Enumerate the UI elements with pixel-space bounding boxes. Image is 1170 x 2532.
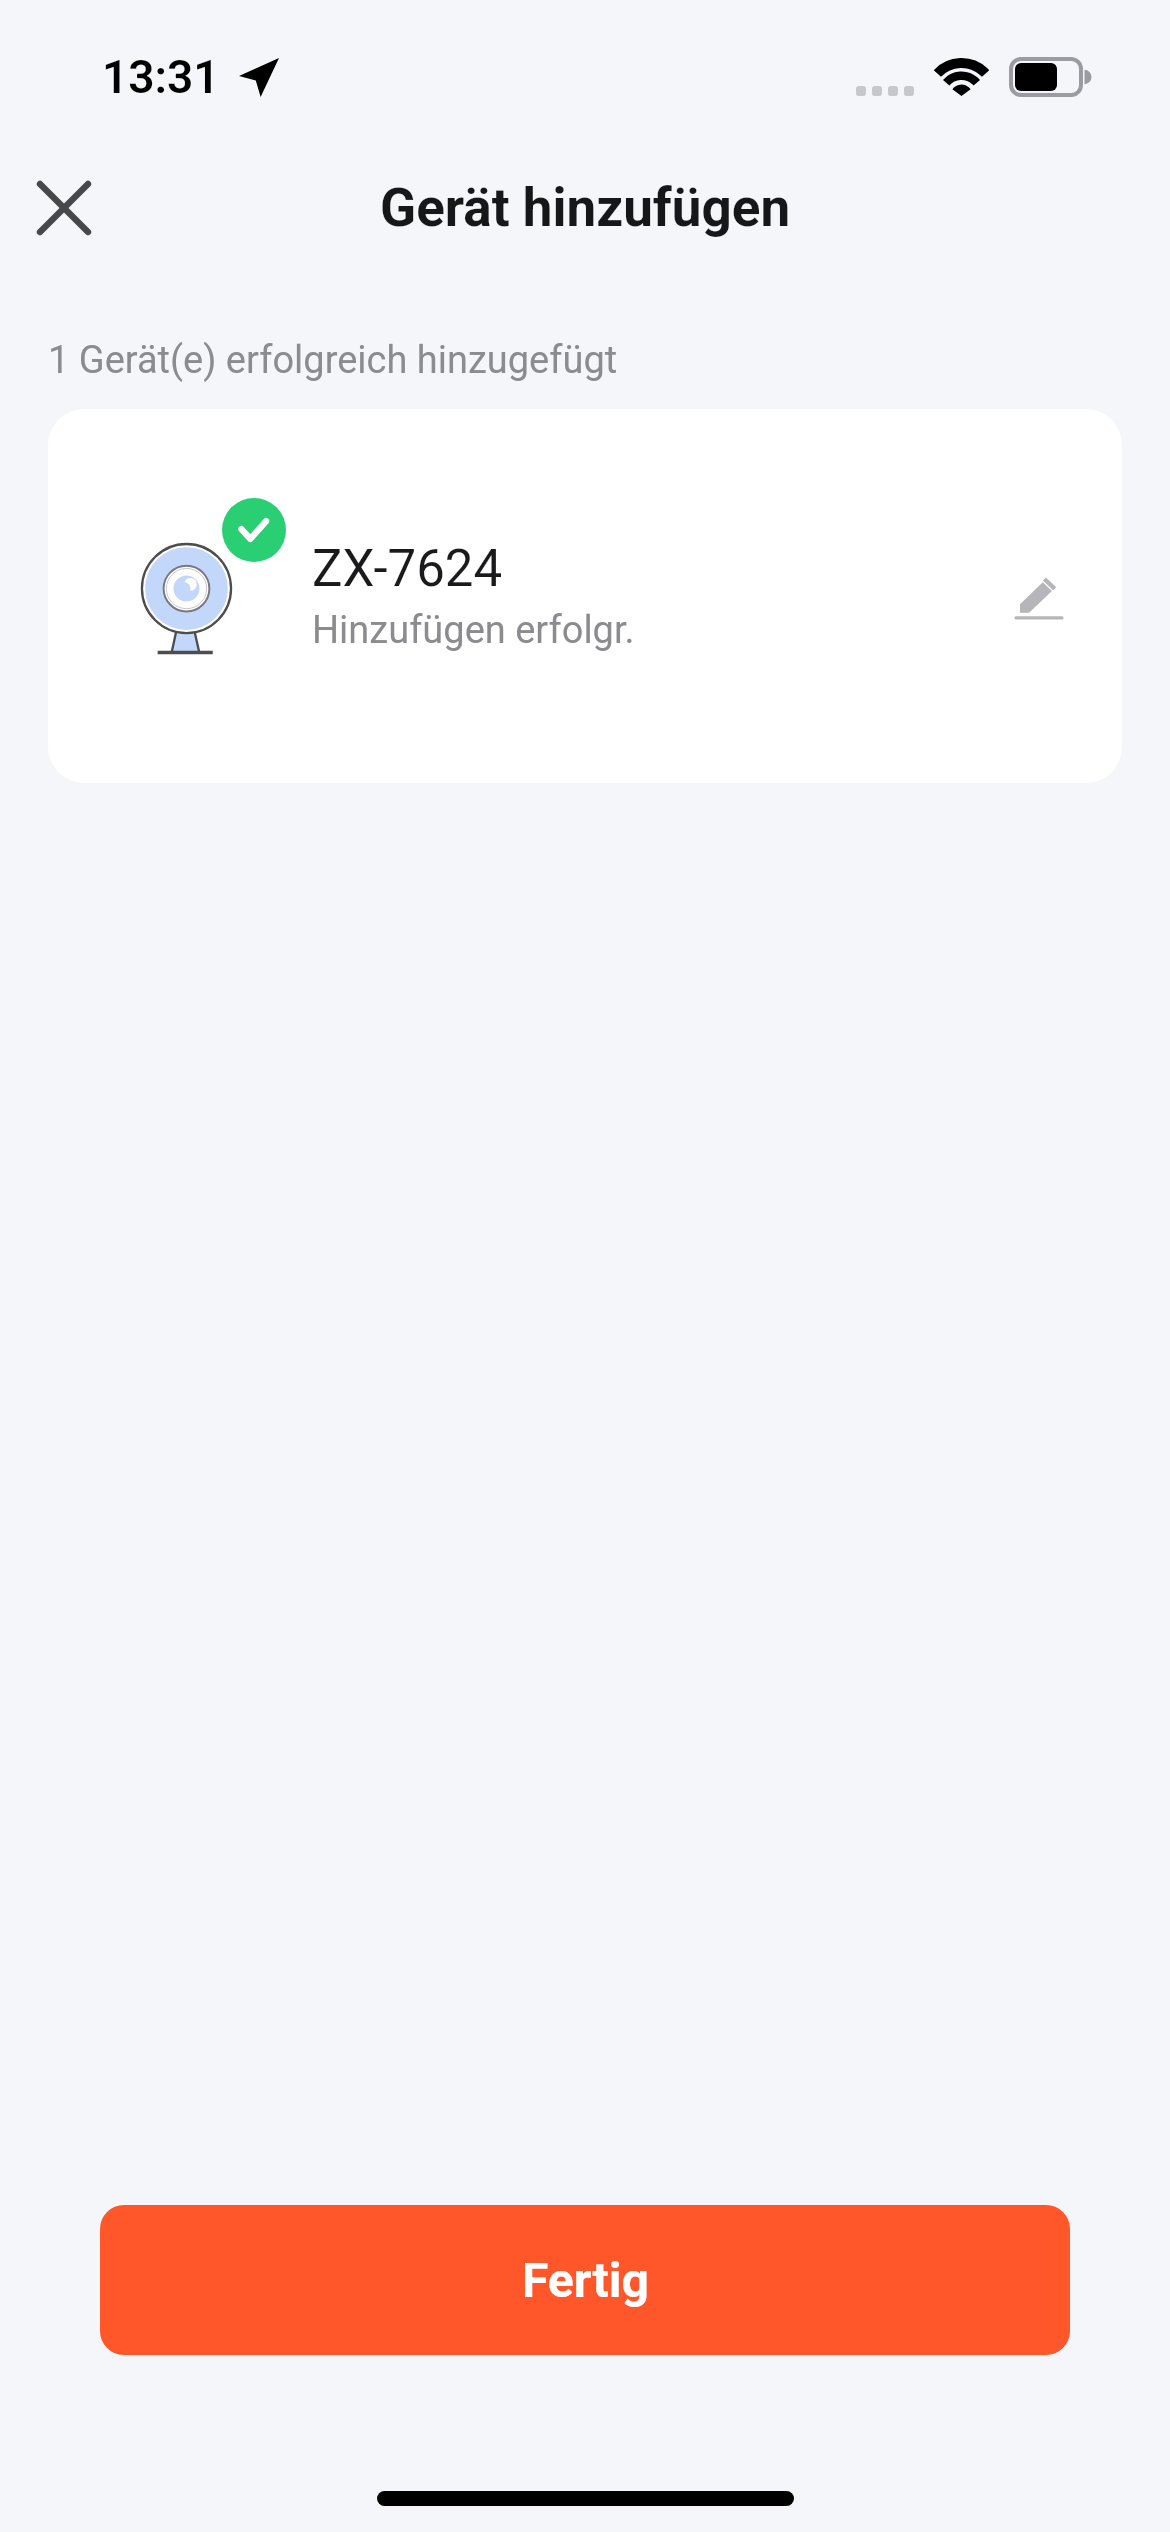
button[interactable]: Fertig — [100, 2205, 1070, 2355]
button[interactable]: Rename device — [988, 547, 1088, 647]
staticText: Hinzufügen erfolgr. — [312, 608, 635, 653]
staticText: Fertig — [522, 2252, 649, 2308]
button[interactable]: Close — [11, 155, 116, 260]
button[interactable]: ZX-7624 — [48, 409, 1122, 783]
staticText: 1 Gerät(e) erfolgreich hinzugefügt — [48, 338, 618, 383]
staticText: Gerät hinzufügen — [380, 177, 791, 239]
staticText: 13:31 — [102, 50, 220, 104]
staticText: ZX-7624 — [312, 539, 503, 599]
